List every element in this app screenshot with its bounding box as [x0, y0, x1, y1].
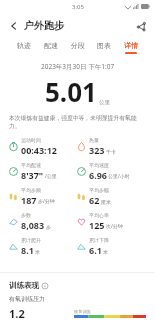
staticText: 8'37" [21, 169, 44, 181]
staticText: 2023年3月30日 下午1:07 [41, 62, 115, 71]
staticText: 训练表现 [9, 281, 39, 290]
button[interactable]: 分段 [70, 41, 86, 54]
staticText: 公里/小时 [108, 173, 130, 180]
staticText: 平均配速 [21, 162, 41, 168]
button[interactable]: 平均步幅 [77, 187, 146, 206]
button[interactable]: Info [41, 282, 48, 289]
staticText: 详情 [124, 41, 138, 50]
staticText: 累计爬升 [21, 237, 41, 243]
staticText: 6.96 [89, 169, 107, 181]
button[interactable]: Back [6, 18, 22, 34]
staticText: 62 [89, 194, 100, 206]
button[interactable]: 热量 [77, 137, 146, 156]
staticText: 00:43:12 [21, 144, 57, 156]
staticText: 有氧训练压力 [9, 295, 45, 303]
staticText: 1.2 [9, 306, 25, 320]
staticText: 6.1 [89, 244, 102, 256]
button[interactable]: 轨迹 [16, 41, 32, 54]
staticText: 本次锻炼有益健康，强度中等，未明显提升有氧能力。 [9, 114, 146, 130]
button[interactable]: 累计爬升 [9, 237, 77, 256]
button[interactable]: 平均速度 [77, 162, 146, 181]
staticText: 户外跑步 [24, 19, 64, 32]
staticText: 米 [35, 249, 40, 255]
staticText: 次/分钟 [106, 223, 123, 230]
button[interactable]: 运动时间 [9, 137, 77, 156]
button[interactable]: Share [133, 18, 149, 34]
staticText: 米 [103, 249, 108, 255]
staticText: 平均速度 [89, 162, 109, 168]
staticText: 轨迹 [17, 41, 31, 50]
staticText: 步 [46, 224, 51, 230]
staticText: 运动时间 [21, 137, 41, 143]
staticText: 分段 [71, 41, 85, 50]
staticText: 125 [89, 219, 105, 231]
staticText: 热量 [89, 137, 99, 143]
button[interactable]: 平均心率 [77, 212, 146, 231]
staticText: 187 [21, 194, 37, 206]
staticText: 累计下降 [89, 237, 109, 243]
staticText: 图表 [97, 41, 111, 50]
staticText: 3:05 [72, 3, 84, 11]
staticText: 公里 [99, 99, 110, 106]
button[interactable]: 图表 [96, 41, 112, 54]
staticText: 平均心率 [89, 212, 109, 218]
staticText: 千卡 [106, 149, 116, 155]
button[interactable]: 累计下降 [77, 237, 146, 256]
staticText: 5.01 [45, 74, 97, 109]
staticText: 平均步幅 [89, 187, 109, 193]
staticText: 323 [89, 144, 105, 156]
staticText: 恢复训练 [74, 309, 91, 314]
button[interactable]: 配速 [43, 41, 59, 54]
button[interactable]: 步数 [9, 212, 77, 231]
staticText: 厘米 [101, 199, 111, 205]
staticText: 步数 [21, 212, 31, 218]
staticText: 配速 [44, 41, 58, 50]
button[interactable]: 平均步频 [9, 187, 77, 206]
staticText: 8.1 [21, 244, 34, 256]
button[interactable]: 详情 [123, 41, 139, 54]
button[interactable]: 平均配速 [9, 162, 77, 181]
staticText: 平均步频 [21, 187, 41, 193]
staticText: 步/分钟 [38, 198, 55, 205]
staticText: /公里 [45, 173, 57, 180]
staticText: 8,083 [21, 219, 45, 231]
